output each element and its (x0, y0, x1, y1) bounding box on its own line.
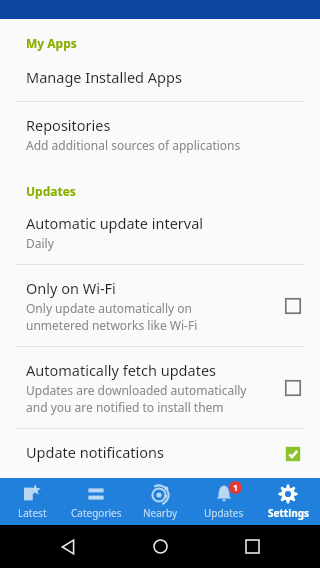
staticText: and you are notified to install them (26, 399, 224, 415)
button[interactable]: Nearby (128, 478, 192, 525)
button[interactable]: Back (44, 525, 92, 568)
staticText: Latest (18, 506, 47, 520)
button[interactable]: Latest (0, 478, 64, 525)
staticText: 1 (233, 482, 238, 494)
button[interactable]: Home (136, 525, 184, 568)
staticText: Updates (26, 183, 76, 199)
button[interactable]: Categories (64, 478, 128, 525)
button[interactable]: Only on Wi-Fi (0, 265, 320, 346)
staticText: Settings (268, 506, 309, 520)
staticText: unmetered networks like Wi-Fi (26, 317, 198, 333)
button[interactable]: Recent apps (228, 525, 276, 568)
staticText: Categories (71, 506, 122, 520)
staticText: Add additional sources of applications (26, 137, 241, 153)
staticText: Updates are downloaded automatically (26, 382, 247, 398)
button[interactable]: Settings (256, 478, 320, 525)
button[interactable]: Update notifications (0, 429, 320, 478)
staticText: Automatic update interval (26, 213, 204, 233)
staticText: Nearby (143, 506, 178, 520)
staticText: Update notifications (26, 442, 164, 462)
button[interactable]: Repositories (0, 102, 320, 167)
button[interactable]: 1 (192, 478, 256, 525)
staticText: Daily (26, 235, 54, 251)
staticText: Repositories (26, 115, 111, 135)
staticText: Manage Installed Apps (26, 67, 182, 87)
button[interactable]: Automatically fetch updates (0, 347, 320, 428)
staticText: Automatically fetch updates (26, 360, 217, 380)
staticText: Only on Wi-Fi (26, 278, 116, 298)
staticText: My Apps (26, 35, 77, 51)
button[interactable]: Automatic update interval (0, 205, 320, 264)
staticText: Only update automatically on (26, 300, 192, 316)
staticText: Updates (204, 506, 244, 520)
button[interactable]: Manage Installed Apps (0, 57, 320, 101)
